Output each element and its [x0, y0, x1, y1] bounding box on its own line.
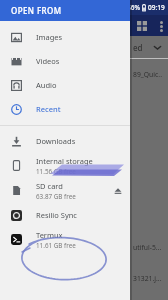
staticText: 89_Quic..: [133, 70, 162, 79]
button[interactable]: SD card: [0, 178, 130, 203]
button[interactable]: Eject SD card: [112, 185, 124, 197]
staticText: Termux: [36, 230, 63, 240]
button[interactable]: Downloads: [0, 129, 130, 153]
button[interactable]: Grid view: [132, 16, 152, 36]
button[interactable]: Termux: [0, 227, 130, 252]
button[interactable]: OPEN FROM: [0, 0, 130, 21]
button[interactable]: Resilio Sync: [0, 203, 130, 227]
staticText: Downloads: [36, 136, 76, 146]
staticText: Recent: [36, 104, 61, 114]
staticText: Internal storage: [36, 156, 93, 166]
staticText: SD card: [36, 181, 63, 191]
staticText: 31321.j...: [133, 274, 162, 283]
staticText: utiful-5...: [133, 243, 162, 252]
staticText: ed: [133, 42, 143, 53]
staticText: 11.56 GB free: [36, 167, 76, 176]
button[interactable]: Recent: [0, 97, 130, 121]
staticText: Videos: [36, 56, 60, 66]
button[interactable]: Images: [0, 25, 130, 49]
staticText: 11.61 GB free: [36, 241, 76, 250]
staticText: 63.87 GB free: [36, 192, 76, 201]
staticText: Resilio Sync: [36, 210, 77, 220]
staticText: Images: [36, 32, 63, 42]
button[interactable]: Internal storage: [0, 153, 130, 178]
staticText: Audio: [36, 80, 57, 90]
button[interactable]: More options: [152, 17, 168, 35]
staticText: 56%: [127, 3, 140, 12]
staticText: OPEN FROM: [11, 5, 62, 16]
staticText: 09:19: [148, 3, 165, 12]
button[interactable]: Videos: [0, 49, 130, 73]
button[interactable]: Audio: [0, 73, 130, 97]
